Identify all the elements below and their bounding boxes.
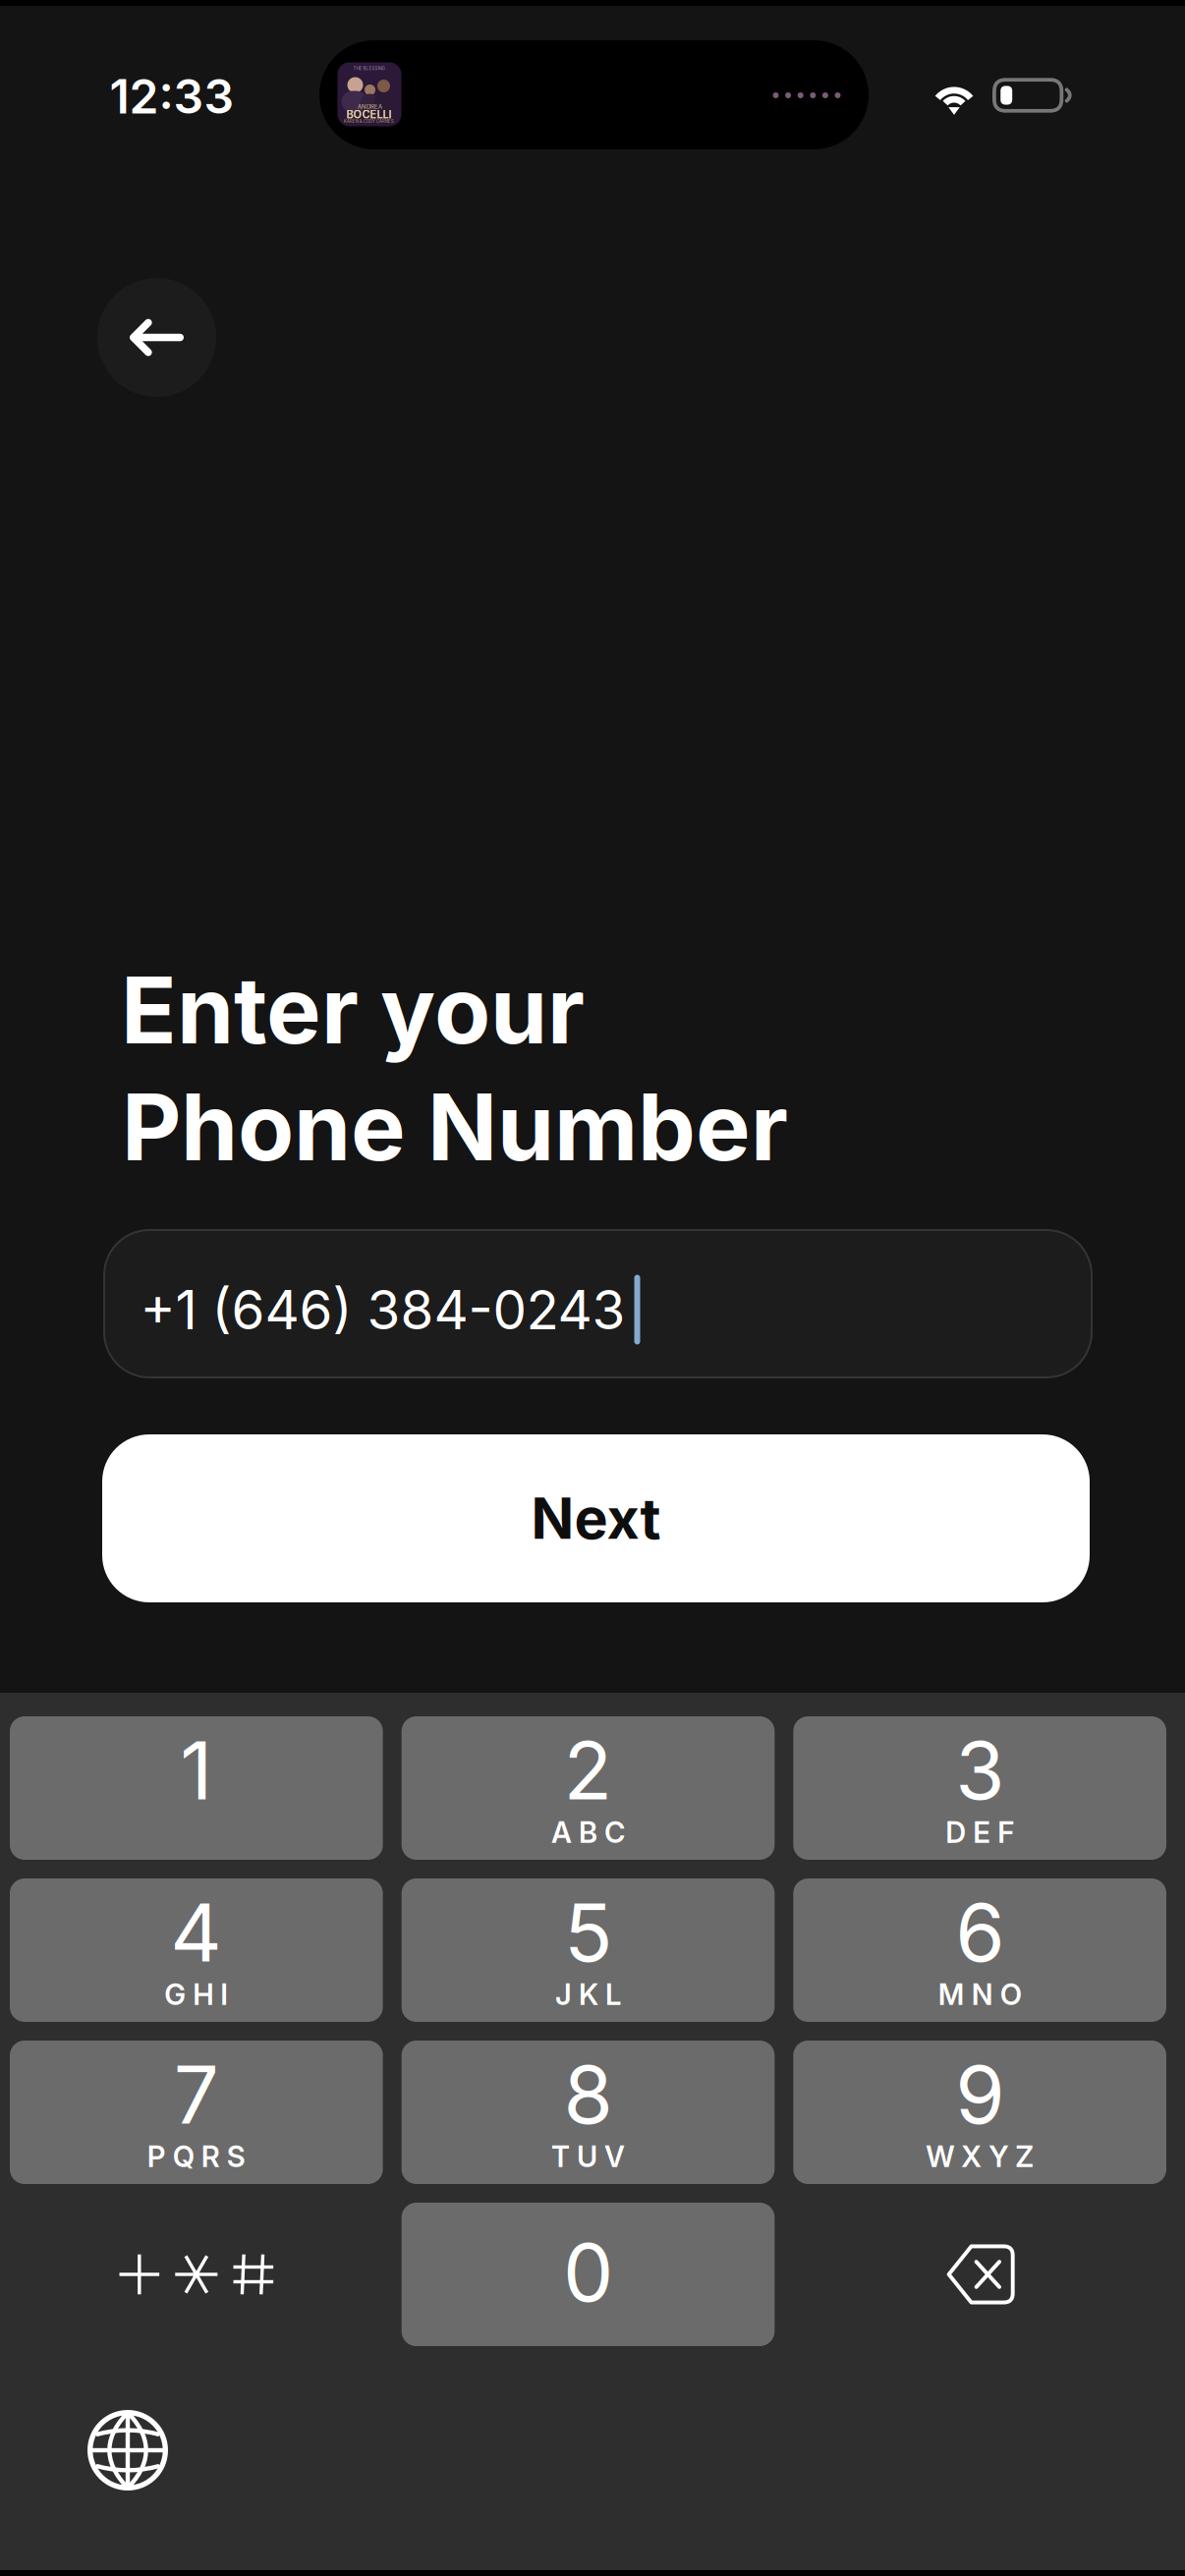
staticText: D E F [945,1815,1014,1850]
button[interactable]: 4 [10,1878,383,2022]
staticText: 2 [564,1722,613,1819]
staticText: Phone Number [122,1071,788,1182]
staticText: 9 [955,2046,1004,2143]
button[interactable]: 2 [402,1716,775,1860]
staticText: ANDREA [358,103,382,110]
button[interactable]: 5 [402,1878,775,2022]
staticText: 3 [955,1722,1004,1819]
button[interactable]: Back [97,278,216,397]
staticText: KAREN & CODY CARNES [344,119,394,124]
button[interactable]: 9 [793,2041,1166,2184]
button[interactable]: Next [102,1434,1090,1602]
button[interactable]: 8 [402,2041,775,2184]
button[interactable]: 3 [793,1716,1166,1860]
staticText: Next [531,1484,661,1552]
staticText: G H I [164,1977,228,2012]
staticText: 5 [564,1884,612,1981]
staticText: M N O [938,1977,1022,2012]
staticText: 7 [174,2046,219,2143]
staticText: 8 [564,2046,613,2143]
staticText: T U V [551,2139,625,2174]
staticText: 0 [563,2224,613,2321]
button[interactable]: Change keyboard [69,2391,187,2509]
staticText: +1 (646) 384-0243 [140,1277,625,1342]
staticText: 6 [955,1884,1004,1981]
button[interactable]: Delete [793,2203,1166,2346]
staticText: 12:33 [110,68,234,125]
button[interactable]: 7 [10,2041,383,2184]
button[interactable]: 0 [402,2203,775,2346]
staticText: Enter your [121,954,585,1065]
staticText: 4 [170,1884,222,1981]
staticText: W X Y Z [926,2139,1034,2174]
staticText: A B C [551,1815,625,1850]
staticText: J K L [555,1977,621,2012]
button[interactable]: 1 [10,1716,383,1860]
button[interactable]: +1 (646) 384-0243 [104,1230,1092,1377]
staticText: 1 [180,1722,213,1819]
staticText: BOCELLI [346,108,392,121]
staticText: P Q R S [147,2139,245,2174]
staticText: THE BLESSING [353,66,385,71]
button[interactable]: Symbols [10,2203,383,2346]
button[interactable]: 6 [793,1878,1166,2022]
